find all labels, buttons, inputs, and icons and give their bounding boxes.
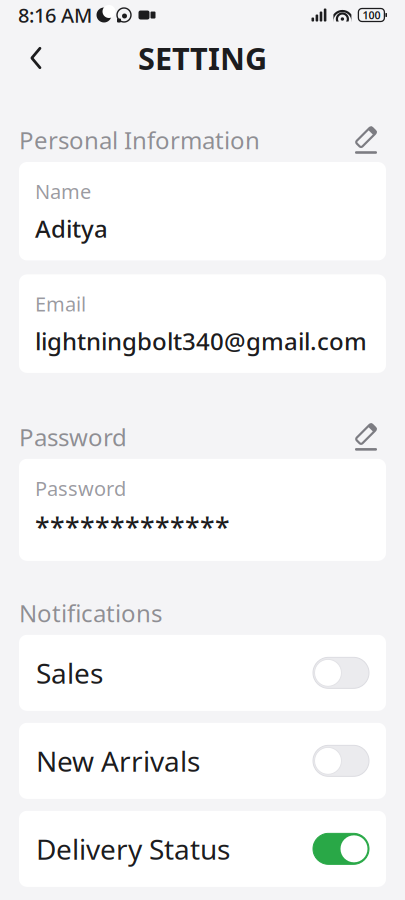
staticText: New Arrivals <box>36 742 200 779</box>
staticText: Aditya <box>35 213 108 244</box>
staticText: Delivery Status <box>36 830 230 867</box>
button[interactable]: New Arrivals <box>19 723 386 799</box>
staticText: Name <box>35 178 91 205</box>
staticText: Password <box>19 421 127 453</box>
staticText: Sales <box>36 654 103 691</box>
button[interactable]: Sales <box>19 635 386 711</box>
button[interactable]: Delivery Status <box>19 811 386 887</box>
staticText: Password <box>35 475 126 501</box>
staticText: Notifications <box>19 597 162 629</box>
staticText: ************* <box>35 509 230 545</box>
staticText: SETTING <box>138 38 267 78</box>
button[interactable]: Back <box>14 36 58 80</box>
button[interactable]: Edit Personal Information <box>346 120 386 160</box>
staticText: 8:16 AM <box>18 2 92 28</box>
staticText: Personal Information <box>19 124 260 156</box>
staticText: lightningbolt340@gmail.com <box>35 325 367 357</box>
staticText: Email <box>35 290 86 317</box>
staticText: 100 <box>362 8 380 22</box>
button[interactable]: Edit Password <box>346 417 386 457</box>
